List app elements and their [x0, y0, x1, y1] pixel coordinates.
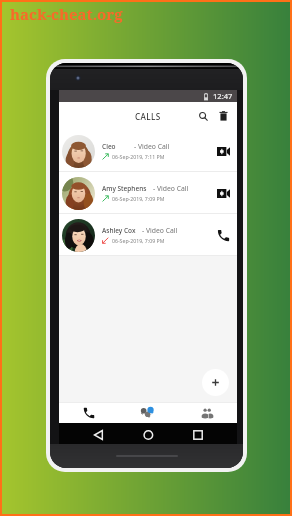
staticText: hack-cheat.org: [10, 4, 123, 24]
staticText: 06-Sep-2019, 7:11 PM: [112, 153, 165, 160]
staticText: - Video Call: [153, 184, 189, 193]
button[interactable]: Video call: [211, 172, 235, 214]
button[interactable]: Contacts: [178, 402, 237, 423]
button[interactable]: Cleo: [59, 130, 237, 172]
button[interactable]: Calls: [59, 402, 119, 423]
button[interactable]: New call: [202, 369, 229, 396]
staticText: 12:47: [213, 91, 233, 101]
staticText: Amy Stephens: [102, 184, 147, 193]
button[interactable]: Amy Stephens: [59, 172, 237, 214]
staticText: - Video Call: [134, 142, 170, 151]
button[interactable]: Search: [193, 106, 213, 126]
staticText: Ashley Cox: [102, 226, 136, 235]
button[interactable]: Call: [211, 214, 235, 256]
staticText: 06-Sep-2019, 7:09 PM: [112, 237, 165, 244]
staticText: - Video Call: [142, 226, 178, 235]
staticText: Cleo: [102, 142, 128, 151]
staticText: 06-Sep-2019, 7:09 PM: [112, 195, 165, 202]
button[interactable]: Chats: [119, 402, 178, 423]
button[interactable]: Ashley Cox: [59, 214, 237, 256]
button[interactable]: Delete: [213, 106, 233, 126]
staticText: CALLS: [135, 111, 161, 122]
button[interactable]: Video call: [211, 130, 235, 172]
